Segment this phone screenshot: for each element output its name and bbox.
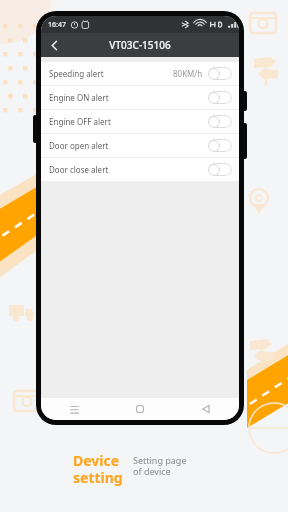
button[interactable]: Recent apps bbox=[41, 398, 107, 420]
button[interactable]: Home bbox=[107, 398, 173, 420]
staticText: 80KM/h bbox=[173, 68, 203, 79]
staticText: Door close alert bbox=[49, 164, 109, 175]
button[interactable]: Back bbox=[173, 398, 239, 420]
button[interactable]: Toggle alert bbox=[208, 91, 232, 104]
button[interactable]: Speeding alert bbox=[41, 62, 239, 85]
button[interactable]: Toggle alert bbox=[208, 139, 232, 152]
button[interactable]: Door open alert bbox=[41, 134, 239, 157]
button[interactable]: Toggle alert bbox=[208, 163, 232, 176]
button[interactable]: Engine ON alert bbox=[41, 86, 239, 109]
staticText: 16:47 bbox=[48, 20, 66, 30]
staticText: Engine OFF alert bbox=[49, 116, 111, 127]
staticText: Device setting bbox=[73, 451, 123, 487]
button[interactable]: Toggle alert bbox=[208, 115, 232, 128]
staticText: Setting page of device bbox=[133, 454, 187, 477]
button[interactable]: Back bbox=[41, 33, 68, 57]
staticText: Speeding alert bbox=[49, 68, 104, 79]
staticText: Door open alert bbox=[49, 140, 109, 151]
staticText: Engine ON alert bbox=[49, 92, 109, 103]
button[interactable]: Door close alert bbox=[41, 158, 239, 181]
button[interactable]: Toggle alert bbox=[208, 67, 232, 80]
staticText: VT03C-15106 bbox=[109, 38, 171, 52]
button[interactable]: Engine OFF alert bbox=[41, 110, 239, 133]
